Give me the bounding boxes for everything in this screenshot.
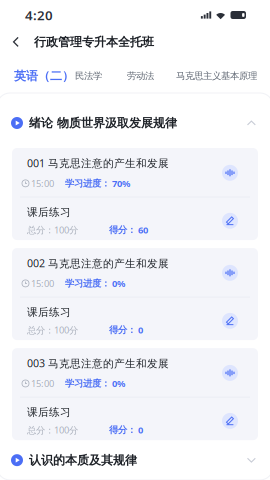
staticText: 民法学 [75, 70, 102, 82]
button[interactable]: 001 马克思注意的产生和发展 [12, 148, 258, 197]
staticText: 学习进度： [65, 178, 110, 189]
staticText: 课后练习 [27, 206, 71, 219]
button[interactable]: 002 马克思注意的产生和发展 [12, 248, 258, 297]
staticText: 学习进度： [65, 278, 110, 289]
staticText: 4:20 [25, 6, 53, 24]
staticText: 002 马克思注意的产生和发展 [27, 256, 169, 270]
staticText: 001 马克思注意的产生和发展 [27, 156, 169, 170]
staticText: 0 [138, 324, 143, 336]
staticText: 总分：100分 [27, 324, 78, 336]
staticText: 得分： [109, 424, 136, 436]
button[interactable]: 认识的本质及其规律 [0, 448, 270, 472]
staticText: 行政管理专升本全托班 [34, 35, 154, 49]
staticText: 绪论 物质世界汲取发展规律 [29, 116, 177, 130]
button[interactable]: 马克思主义基本原理 [176, 63, 257, 89]
staticText: 劳动法 [127, 70, 154, 82]
button[interactable]: 民法学 [75, 63, 102, 89]
staticText: 总分：100分 [27, 224, 78, 236]
button[interactable]: 课后练习 [12, 298, 258, 340]
staticText: 认识的本质及其规律 [29, 453, 137, 467]
staticText: 马克思主义基本原理 [176, 70, 257, 82]
staticText: 0% [112, 277, 125, 290]
staticText: 0% [112, 377, 125, 390]
staticText: 总分：100分 [27, 424, 78, 436]
button[interactable]: 003 马克思注意的产生和发展 [12, 348, 258, 397]
staticText: 15:00 [31, 377, 54, 390]
staticText: 15:00 [31, 277, 54, 290]
button[interactable]: 劳动法 [127, 63, 154, 89]
staticText: 得分： [109, 224, 136, 236]
staticText: 0 [138, 424, 143, 436]
staticText: 学习进度： [65, 378, 110, 389]
staticText: 课后练习 [27, 406, 71, 419]
staticText: 得分： [109, 324, 136, 336]
button[interactable]: 返回 [5, 31, 27, 53]
staticText: 70% [112, 177, 130, 190]
staticText: 003 马克思注意的产生和发展 [27, 356, 169, 370]
button[interactable]: 课后练习 [12, 398, 258, 440]
staticText: 15:00 [31, 177, 54, 190]
staticText: 课后练习 [27, 306, 71, 319]
button[interactable]: 英语（二） [14, 63, 74, 89]
staticText: 英语（二） [14, 69, 74, 83]
button[interactable]: 绪论 物质世界汲取发展规律 [0, 111, 270, 135]
button[interactable]: 课后练习 [12, 198, 258, 240]
staticText: 60 [138, 224, 148, 236]
